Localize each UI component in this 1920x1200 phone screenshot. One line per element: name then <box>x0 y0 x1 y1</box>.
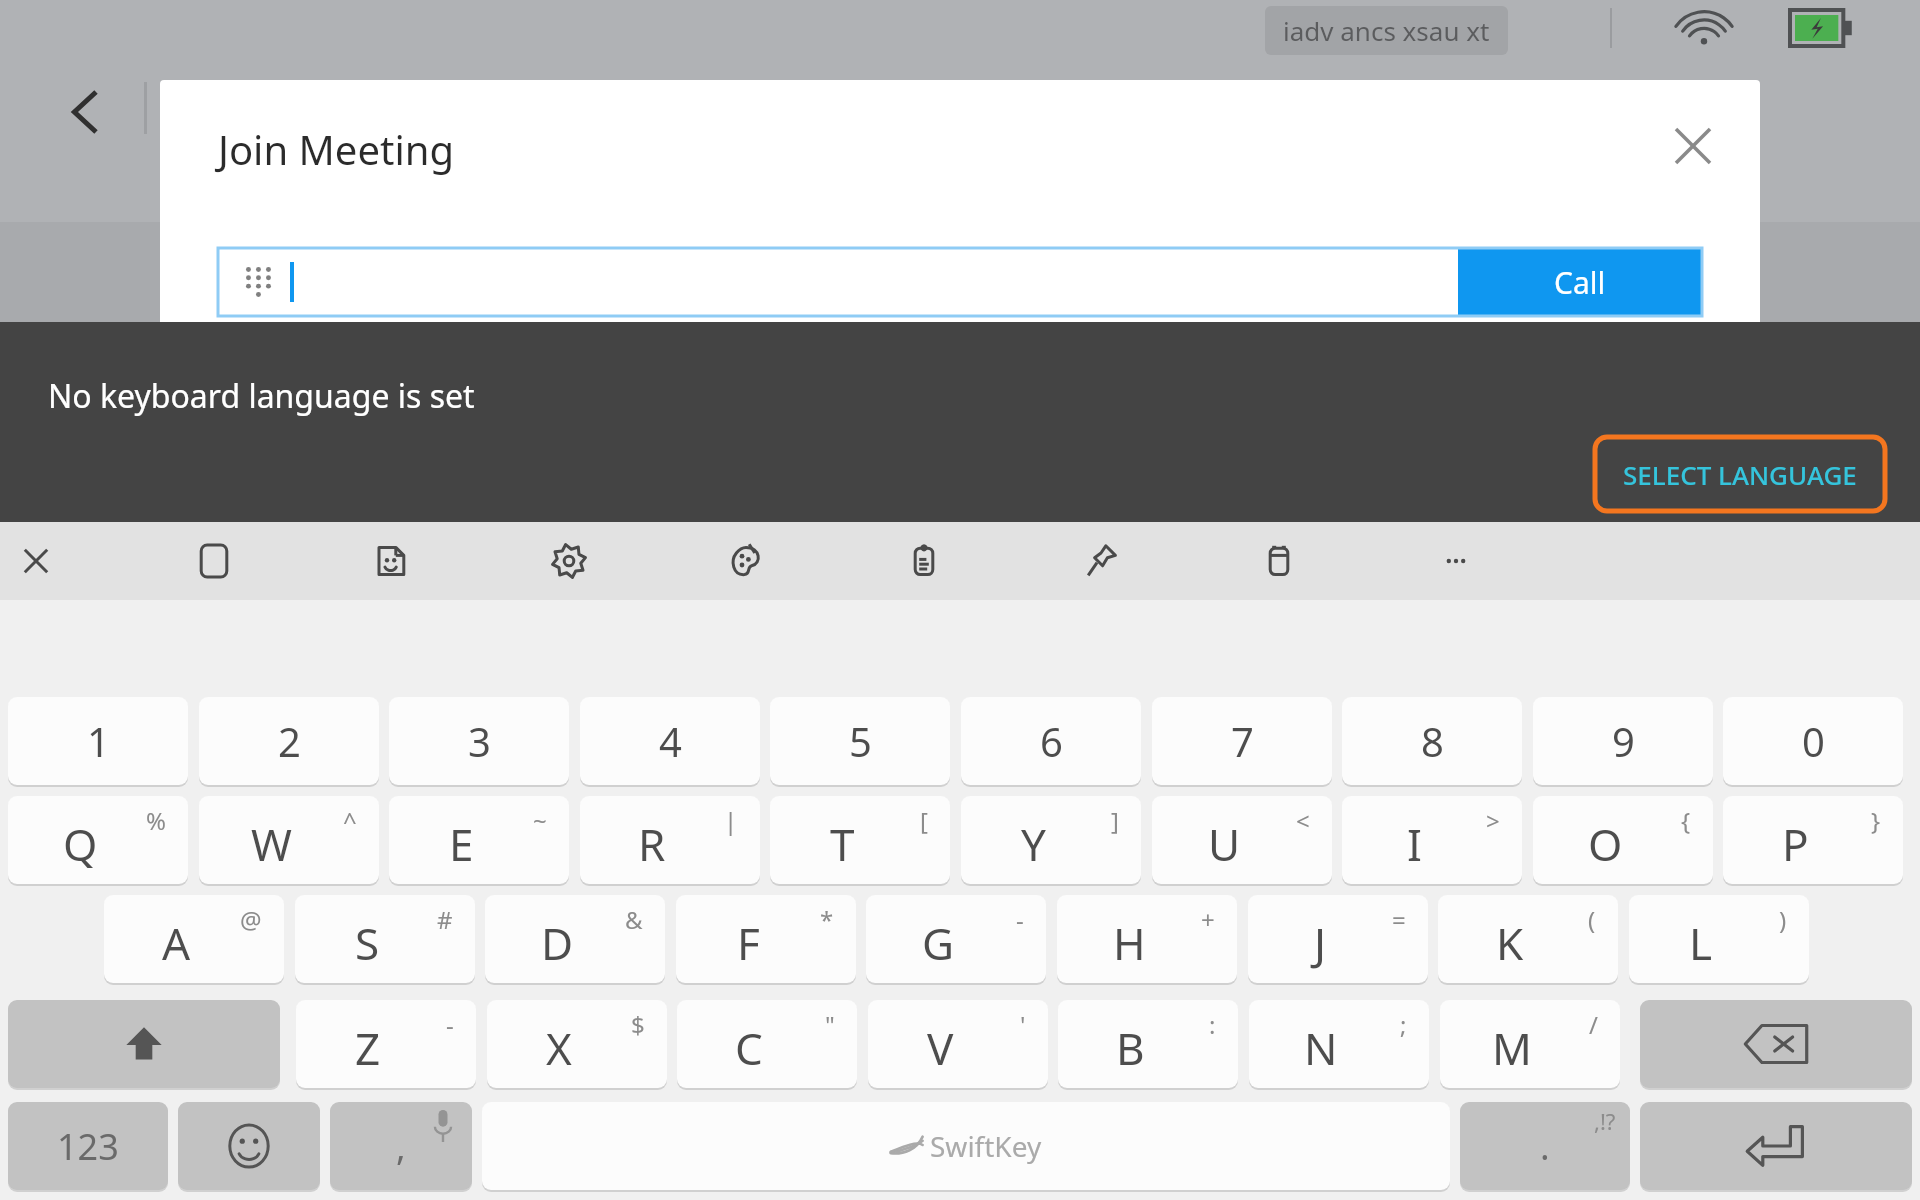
button[interactable]: Themes <box>707 522 785 600</box>
button[interactable]: O <box>1533 796 1713 884</box>
staticText: E <box>449 814 474 874</box>
staticText: - <box>1016 903 1024 936</box>
staticText: ] <box>1111 804 1119 837</box>
staticText: 7 <box>1231 714 1254 768</box>
button[interactable]: W <box>199 796 379 884</box>
button[interactable]: Close <box>0 522 75 600</box>
staticText: X <box>546 1018 572 1078</box>
staticText: J <box>1314 913 1327 973</box>
staticText: Z <box>355 1018 381 1078</box>
button[interactable]: I <box>1342 796 1522 884</box>
staticText: 4 <box>659 714 682 768</box>
button[interactable]: Close <box>1655 108 1731 184</box>
button[interactable]: U <box>1152 796 1332 884</box>
staticText: V <box>927 1018 954 1078</box>
staticText: 2 <box>278 714 301 768</box>
staticText: I <box>1407 814 1422 874</box>
staticText: H <box>1113 913 1146 973</box>
button[interactable]: Shift <box>8 1000 280 1088</box>
staticText: ' <box>1020 1008 1026 1041</box>
button[interactable]: Q <box>8 796 188 884</box>
staticText: R <box>638 814 666 874</box>
staticText: ) <box>1779 903 1787 936</box>
staticText: @ <box>240 903 262 936</box>
button[interactable]: Z <box>296 1000 476 1088</box>
button[interactable]: Back <box>48 72 128 152</box>
staticText: O <box>1588 814 1623 874</box>
staticText: Y <box>1021 814 1046 874</box>
button[interactable]: N <box>1249 1000 1429 1088</box>
button[interactable]: Y <box>961 796 1141 884</box>
button[interactable]: A <box>104 895 284 983</box>
button[interactable]: P <box>1723 796 1903 884</box>
staticText: 6 <box>1040 714 1063 768</box>
button[interactable]: E <box>389 796 569 884</box>
button[interactable]: Enter <box>1640 1102 1912 1190</box>
button[interactable]: 5 <box>770 697 950 785</box>
button[interactable]: C <box>677 1000 857 1088</box>
staticText: # <box>437 903 453 936</box>
button[interactable]: 2 <box>199 697 379 785</box>
staticText: B <box>1116 1018 1145 1078</box>
button[interactable]: Space <box>482 1102 1450 1190</box>
button[interactable]: Pin <box>1062 522 1140 600</box>
button[interactable]: 1 <box>8 697 188 785</box>
staticText: : <box>1209 1008 1216 1041</box>
button[interactable]: V <box>868 1000 1048 1088</box>
button[interactable]: SELECT LANGUAGE <box>1595 437 1885 511</box>
button[interactable]: M <box>1440 1000 1620 1088</box>
staticText: ~ <box>533 804 547 837</box>
button[interactable]: Backspace <box>1640 1000 1912 1088</box>
staticText: S <box>355 913 380 973</box>
button[interactable]: 8 <box>1342 697 1522 785</box>
button[interactable]: L <box>1629 895 1809 983</box>
staticText: 123 <box>57 1122 119 1171</box>
staticText: A <box>162 913 191 973</box>
button[interactable]: Period <box>1460 1102 1630 1190</box>
button[interactable]: X <box>487 1000 667 1088</box>
button[interactable]: 4 <box>580 697 760 785</box>
staticText: iadv ancs xsau xt <box>1283 13 1490 48</box>
staticText: 8 <box>1421 714 1444 768</box>
button[interactable]: Call <box>1458 248 1702 316</box>
staticText: ; <box>1400 1008 1407 1041</box>
button[interactable]: GIF <box>175 522 253 600</box>
button[interactable]: T <box>770 796 950 884</box>
button[interactable]: J <box>1248 895 1428 983</box>
staticText: G <box>922 913 955 973</box>
staticText: > <box>1486 804 1500 837</box>
staticText: , <box>396 1122 406 1171</box>
button[interactable]: R <box>580 796 760 884</box>
button[interactable]: F <box>676 895 856 983</box>
button[interactable]: K <box>1438 895 1618 983</box>
button[interactable]: More <box>1417 522 1495 600</box>
button[interactable]: Emoji <box>178 1102 320 1190</box>
staticText: Call <box>1554 262 1606 303</box>
button[interactable]: Numbers <box>8 1102 168 1190</box>
staticText: W <box>251 814 292 874</box>
button[interactable]: 9 <box>1533 697 1713 785</box>
staticText: F <box>737 913 760 973</box>
button[interactable]: S <box>295 895 475 983</box>
button[interactable]: B <box>1058 1000 1238 1088</box>
button[interactable]: Settings <box>530 522 608 600</box>
staticText: { <box>1681 804 1691 837</box>
button[interactable]: H <box>1057 895 1237 983</box>
staticText: ( <box>1588 903 1596 936</box>
button[interactable]: Calendar <box>1240 522 1318 600</box>
staticText: % <box>146 804 166 837</box>
staticText: * <box>820 903 834 936</box>
staticText: + <box>1201 903 1215 936</box>
button[interactable]: 0 <box>1723 697 1903 785</box>
button[interactable]: D <box>485 895 665 983</box>
button[interactable]: 3 <box>389 697 569 785</box>
button[interactable]: G <box>866 895 1046 983</box>
button[interactable]: 7 <box>1152 697 1332 785</box>
button[interactable]: Stickers <box>352 522 430 600</box>
staticText: SwiftKey <box>930 1127 1042 1165</box>
staticText: 5 <box>849 714 872 768</box>
button[interactable]: Comma <box>330 1102 472 1190</box>
button[interactable]: 6 <box>961 697 1141 785</box>
staticText: 3 <box>468 714 491 768</box>
button[interactable]: Clipboard <box>885 522 963 600</box>
